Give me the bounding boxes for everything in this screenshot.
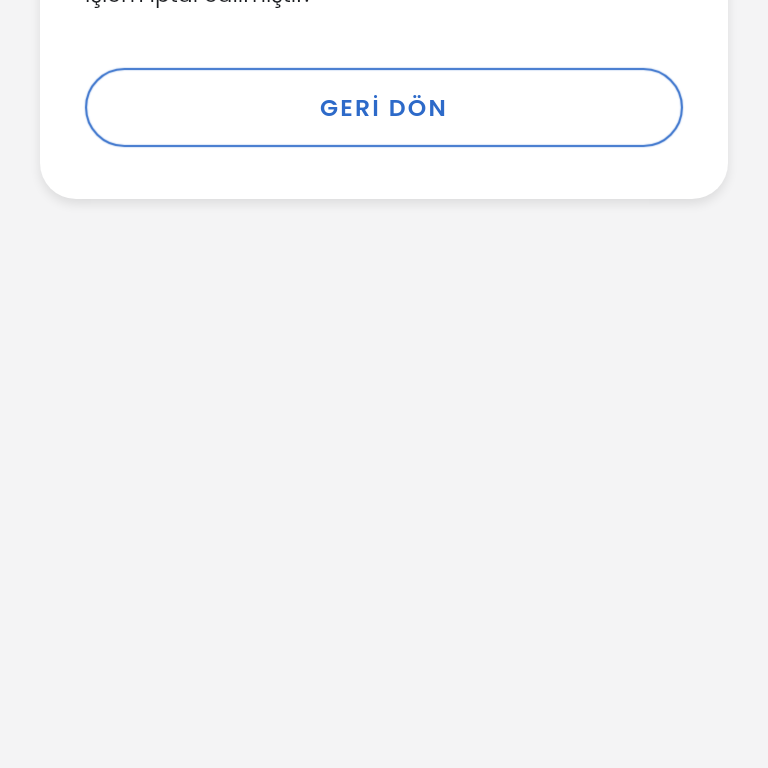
- button[interactable]: GERİ DÖN: [85, 68, 683, 147]
- staticText: GERİ DÖN: [320, 91, 448, 124]
- staticText: Talebiniz alınmış olup, işlem iptal edil…: [85, 0, 683, 10]
